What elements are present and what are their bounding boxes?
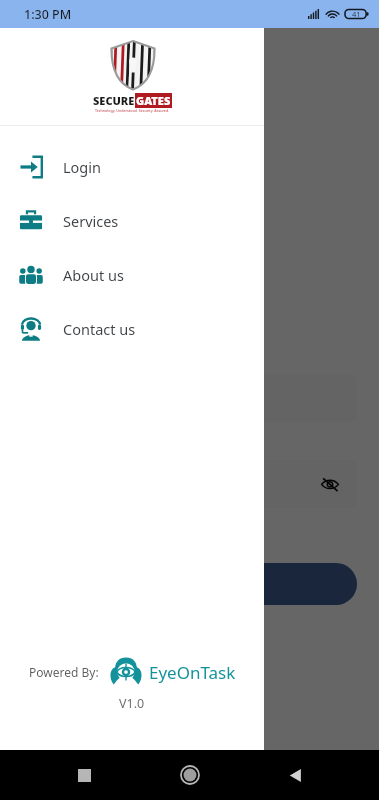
staticText: Powered By: [29, 664, 99, 680]
button[interactable]: Back [273, 753, 317, 797]
staticText: Contact us [63, 319, 136, 339]
staticText: 41 [352, 9, 361, 19]
staticText: V1.0 [119, 695, 145, 712]
staticText: Login [63, 157, 101, 177]
staticText: 1:30 PM [24, 6, 72, 23]
staticText: EyeOnTask [149, 661, 236, 684]
button[interactable]: Contact us [0, 302, 264, 356]
staticText: SECURE [93, 93, 135, 108]
button[interactable]: Home [168, 753, 212, 797]
button[interactable]: Services [0, 194, 264, 248]
button[interactable]: LOGIN [22, 563, 357, 605]
button[interactable]: Recents [62, 753, 106, 797]
staticText: Technology. Understood. Security. Assure… [95, 108, 170, 113]
staticText: Employee Login Portal [22, 318, 257, 347]
button[interactable]: About us [0, 248, 264, 302]
staticText: GATES [136, 93, 171, 108]
staticText: Services [63, 211, 119, 231]
button[interactable]: Toggle password visibility [317, 471, 343, 497]
button[interactable]: Login [0, 140, 264, 194]
staticText: About us [63, 265, 124, 285]
